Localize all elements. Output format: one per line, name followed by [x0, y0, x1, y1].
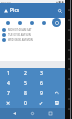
button[interactable]: Action: [16, 19, 24, 27]
staticText: WED 08:00 AM MON: [8, 38, 33, 42]
button[interactable]: 9: [33, 88, 49, 98]
staticText: Pics: [10, 7, 20, 14]
button[interactable]: 1: [0, 68, 17, 78]
button[interactable]: WED 08:00 AM MON: [0, 37, 65, 42]
button[interactable]: TUE 07:30 AM SUN: [0, 32, 65, 37]
button[interactable]: 7: [0, 88, 17, 98]
button[interactable]: 8: [17, 88, 33, 98]
staticText: 3: [40, 70, 43, 77]
button[interactable]: Item 0: [67, 8, 71, 12]
button[interactable]: Home: [29, 110, 36, 117]
staticText: 7: [7, 90, 10, 97]
button[interactable]: Action: [40, 19, 48, 27]
button[interactable]: Undo: [49, 88, 65, 98]
button[interactable]: Item 1: [67, 18, 71, 22]
button[interactable]: Navigate up: [2, 7, 9, 14]
staticText: TUE 07:30 AM SUN: [8, 33, 31, 37]
button[interactable]: Item 9: [67, 97, 71, 101]
button[interactable]: 4: [0, 78, 17, 88]
button[interactable]: Action: [28, 19, 36, 27]
button[interactable]: ✕: [0, 98, 17, 108]
button[interactable]: 0: [17, 98, 33, 108]
button[interactable]: Save: [49, 98, 65, 108]
button[interactable]: Item 5: [67, 57, 71, 61]
button[interactable]: MON 07:00 AM SAT: [0, 27, 65, 32]
button[interactable]: Add: [52, 18, 61, 27]
staticText: 9:41 AM: [1, 0, 11, 3]
staticText: 0: [24, 100, 27, 107]
button[interactable]: Item 3: [67, 38, 71, 42]
button[interactable]: Item 4: [67, 48, 71, 52]
staticText: 4: [7, 80, 10, 87]
button[interactable]: Item 7: [67, 77, 71, 81]
button[interactable]: Action: [4, 19, 12, 27]
staticText: ✕: [6, 100, 11, 106]
button[interactable]: 5: [17, 78, 33, 88]
button[interactable]: Recents: [47, 110, 54, 117]
button[interactable]: 3: [33, 68, 49, 78]
staticText: 2: [24, 70, 27, 77]
staticText: 9: [40, 90, 43, 97]
button[interactable]: 2: [17, 68, 33, 78]
button[interactable]: Back: [11, 110, 18, 117]
staticText: 5: [24, 80, 27, 87]
button[interactable]: Search: [56, 7, 64, 15]
button[interactable]: ✓: [33, 98, 49, 108]
staticText: ✓: [39, 100, 44, 106]
staticText: 6: [40, 80, 43, 87]
button[interactable]: Item 10: [67, 107, 71, 111]
button[interactable]: Item 6: [67, 67, 71, 71]
button[interactable]: 6: [33, 78, 49, 88]
staticText: ▲ ■ ●: [56, 0, 64, 3]
staticText: MON 07:00 AM SAT: [8, 28, 32, 32]
button[interactable]: Item 8: [67, 87, 71, 91]
staticText: 1: [7, 70, 10, 77]
staticText: 8: [24, 90, 27, 97]
button[interactable]: Item 2: [67, 28, 71, 32]
